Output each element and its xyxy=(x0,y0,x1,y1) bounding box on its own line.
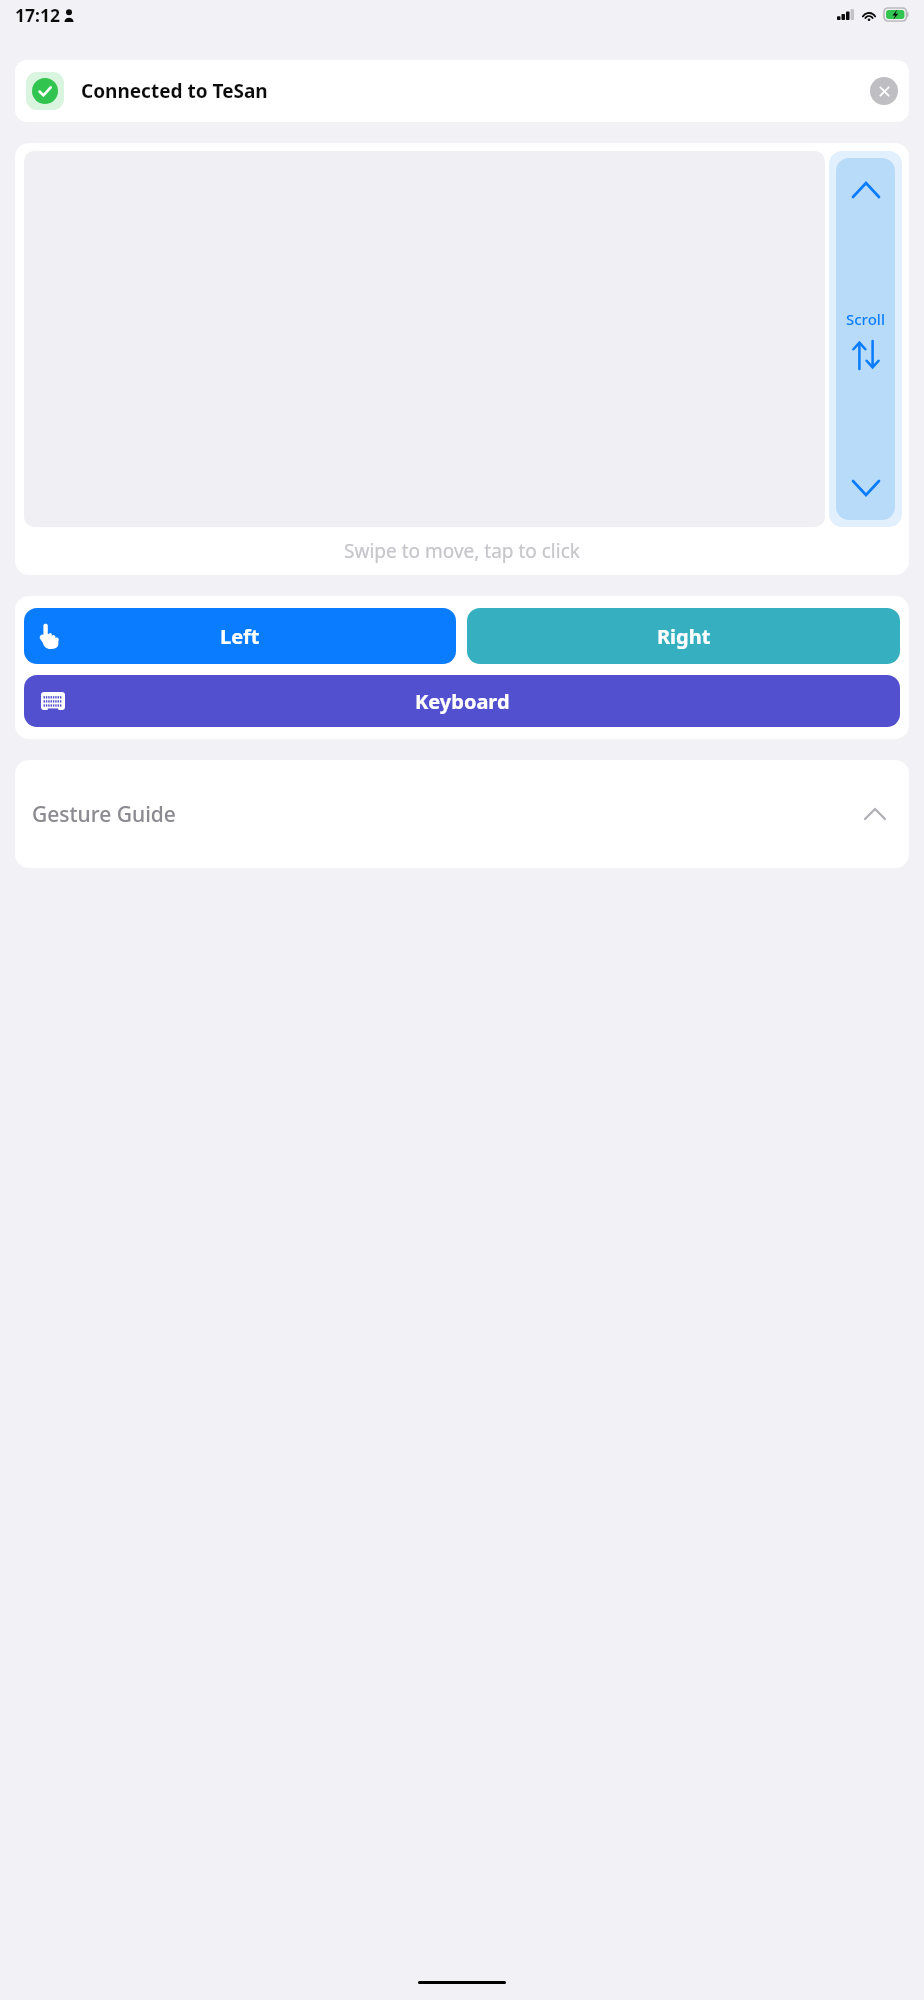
staticText: Swipe to move, tap to click xyxy=(344,538,580,564)
button[interactable]: Dismiss xyxy=(870,77,898,105)
button[interactable]: Connected to TeSan xyxy=(15,60,909,122)
staticText: Connected to TeSan xyxy=(81,78,268,104)
staticText: Gesture Guide xyxy=(32,800,176,829)
staticText: 17:12 xyxy=(15,3,60,27)
button[interactable]: Left xyxy=(24,608,456,664)
staticText: Scroll xyxy=(846,309,885,329)
button[interactable]: Gesture Guide xyxy=(15,760,909,868)
staticText: Right xyxy=(657,623,711,650)
other: Collapse xyxy=(865,809,885,819)
button[interactable]: Right xyxy=(467,608,900,664)
staticText: Left xyxy=(220,623,260,650)
button[interactable]: Scroll xyxy=(836,158,895,520)
staticText: Keyboard xyxy=(415,688,510,715)
button[interactable]: Keyboard xyxy=(24,675,900,727)
